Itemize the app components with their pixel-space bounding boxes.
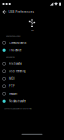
button[interactable]: No data transfer: [0, 97, 64, 105]
staticText: USB tethering: [9, 70, 26, 73]
staticText: USB Preferences: [8, 10, 33, 14]
staticText: USB: [30, 29, 33, 31]
button[interactable]: MIDI: [0, 75, 64, 82]
staticText: This device: [9, 49, 21, 52]
button[interactable]: Webcam: [0, 90, 64, 97]
staticText: Connected device: [9, 41, 26, 44]
button[interactable]: Connected device: [0, 39, 64, 46]
staticText: File transfer: [9, 62, 22, 65]
staticText: PTP: [9, 85, 15, 88]
button[interactable]: Back: [0, 8, 8, 16]
staticText: USE USB FOR: [5, 56, 14, 58]
staticText: USB CONTROLLED BY: [5, 35, 20, 37]
staticText: No data transfer: [9, 100, 26, 103]
staticText: Connect a USB cable to transfer files: [4, 107, 32, 110]
button[interactable]: This device: [0, 46, 64, 54]
button[interactable]: PTP: [0, 82, 64, 90]
staticText: MIDI: [9, 77, 15, 80]
button[interactable]: USB tethering: [0, 67, 64, 75]
button[interactable]: File transfer: [0, 60, 64, 67]
staticText: Webcam: [9, 92, 17, 95]
